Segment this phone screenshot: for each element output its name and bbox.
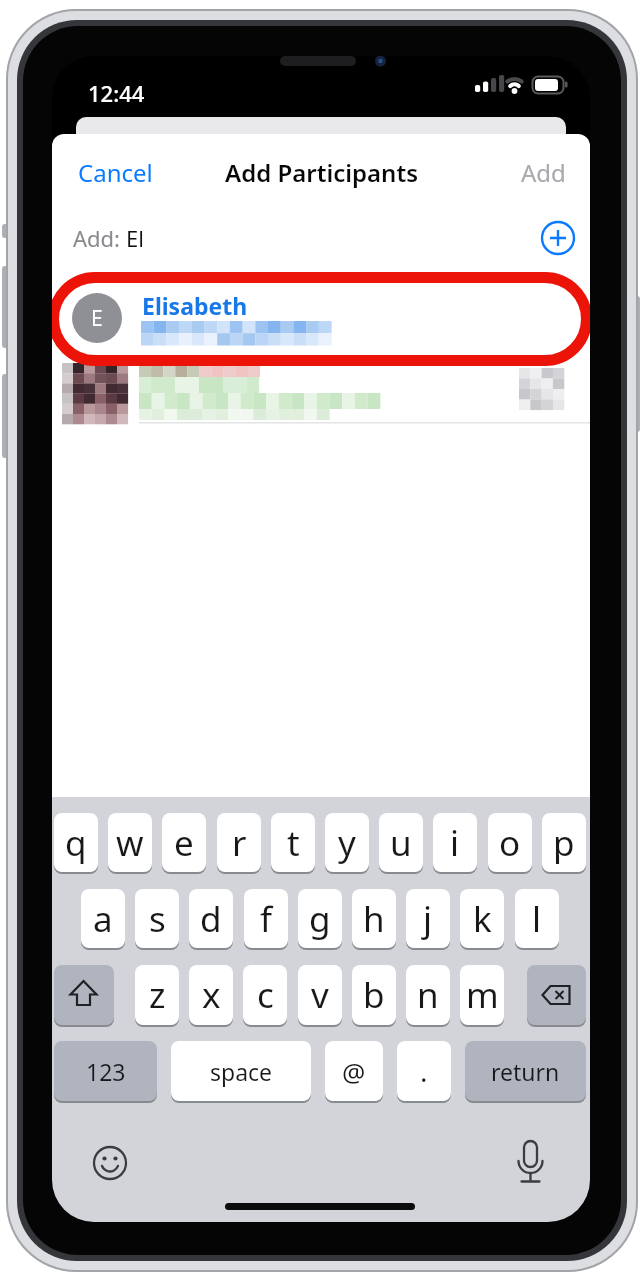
staticText: v bbox=[311, 971, 329, 1019]
staticText: u bbox=[390, 819, 412, 867]
button[interactable]: return bbox=[465, 1041, 586, 1101]
staticText: r bbox=[232, 819, 247, 867]
button[interactable]: r bbox=[217, 813, 261, 872]
staticText: space bbox=[210, 1056, 273, 1087]
button[interactable]: v bbox=[298, 965, 342, 1025]
button[interactable]: n bbox=[406, 965, 450, 1025]
button[interactable]: E bbox=[72, 293, 122, 343]
staticText: j bbox=[423, 895, 433, 943]
staticText: l bbox=[532, 895, 542, 943]
button[interactable]: k bbox=[460, 889, 504, 948]
button[interactable]: c bbox=[243, 965, 287, 1025]
staticText: t bbox=[287, 819, 300, 867]
staticText: d bbox=[200, 895, 222, 943]
button[interactable] bbox=[52, 277, 590, 361]
button[interactable]: u bbox=[379, 813, 423, 872]
button[interactable]: j bbox=[406, 889, 450, 948]
staticText: E bbox=[91, 304, 103, 333]
button[interactable]: i bbox=[433, 813, 477, 872]
staticText: c bbox=[257, 971, 274, 1019]
staticText: m bbox=[466, 971, 499, 1019]
button[interactable]: 123 bbox=[54, 1041, 157, 1101]
staticText: p bbox=[553, 819, 575, 867]
button[interactable]: w bbox=[108, 813, 152, 872]
button[interactable]: space bbox=[171, 1041, 311, 1101]
button[interactable] bbox=[52, 361, 590, 423]
staticText: a bbox=[93, 895, 113, 943]
button[interactable]: x bbox=[189, 965, 233, 1025]
button[interactable]: g bbox=[298, 889, 342, 948]
staticText: x bbox=[202, 971, 221, 1019]
button[interactable]: p bbox=[542, 813, 586, 872]
button[interactable]: f bbox=[244, 889, 288, 948]
staticText: f bbox=[260, 895, 273, 943]
staticText: z bbox=[149, 971, 166, 1019]
button[interactable]: z bbox=[135, 965, 179, 1025]
staticText: Elisabeth bbox=[142, 290, 248, 321]
button[interactable] bbox=[527, 965, 586, 1025]
staticText: e bbox=[174, 819, 194, 867]
staticText: Cancel bbox=[78, 156, 153, 189]
staticText: y bbox=[338, 819, 356, 867]
staticText: g bbox=[309, 895, 331, 943]
staticText: q bbox=[65, 819, 87, 867]
staticText: Add: bbox=[73, 223, 121, 253]
staticText: w bbox=[116, 819, 144, 867]
button[interactable]: m bbox=[460, 965, 504, 1025]
button[interactable]: l bbox=[515, 889, 559, 948]
staticText: return bbox=[491, 1056, 560, 1087]
staticText: k bbox=[473, 895, 492, 943]
staticText: n bbox=[417, 971, 439, 1019]
button[interactable]: y bbox=[325, 813, 369, 872]
staticText: i bbox=[450, 819, 460, 867]
button[interactable]: @ bbox=[325, 1041, 383, 1101]
button[interactable]: a bbox=[81, 889, 125, 948]
button[interactable] bbox=[540, 220, 576, 256]
staticText: 12:44 bbox=[88, 78, 145, 108]
staticText: b bbox=[363, 971, 385, 1019]
button[interactable]: t bbox=[271, 813, 315, 872]
button[interactable]: e bbox=[162, 813, 206, 872]
button[interactable]: b bbox=[352, 965, 396, 1025]
staticText: h bbox=[363, 895, 385, 943]
staticText: Add Participants bbox=[225, 156, 418, 189]
staticText: El bbox=[126, 223, 144, 253]
button[interactable] bbox=[54, 965, 114, 1025]
button[interactable]: d bbox=[189, 889, 233, 948]
button[interactable]: Cancel bbox=[78, 156, 153, 189]
button[interactable]: o bbox=[488, 813, 532, 872]
staticText: o bbox=[499, 819, 521, 867]
staticText: 123 bbox=[86, 1056, 126, 1087]
button[interactable]: . bbox=[397, 1041, 451, 1101]
button[interactable]: h bbox=[352, 889, 396, 948]
staticText: s bbox=[149, 895, 166, 943]
button[interactable]: s bbox=[135, 889, 179, 948]
staticText: Add bbox=[521, 156, 566, 189]
staticText: . bbox=[420, 1052, 428, 1090]
button[interactable]: Add bbox=[521, 156, 566, 189]
staticText: @ bbox=[342, 1054, 366, 1089]
button[interactable]: q bbox=[54, 813, 98, 872]
